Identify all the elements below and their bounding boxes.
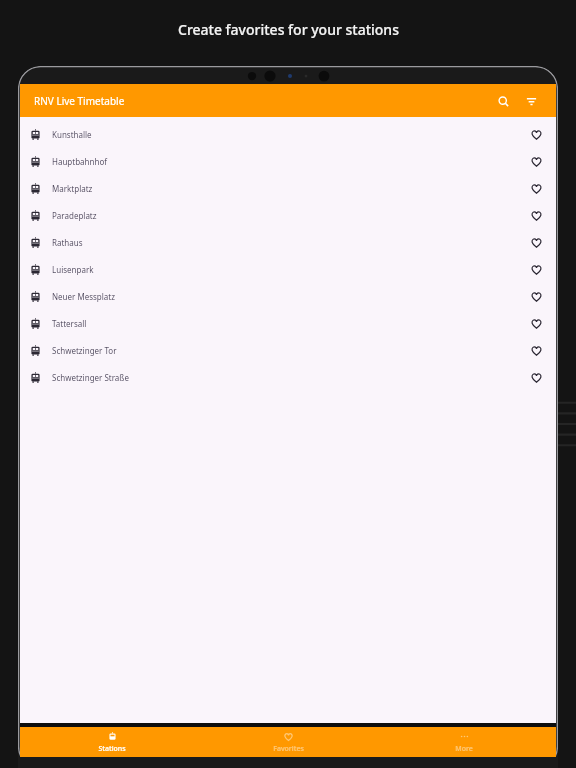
staticText: Kunsthalle	[52, 129, 92, 140]
staticText: Stations	[98, 744, 126, 754]
staticText: Rathaus	[52, 237, 83, 248]
staticText: Create favorites for your stations	[178, 20, 399, 39]
button[interactable]: Search	[492, 90, 514, 112]
staticText: Marktplatz	[52, 183, 93, 194]
button[interactable]: Stations	[28, 727, 196, 757]
button[interactable]: Add Tattersall to favorites	[526, 314, 546, 334]
staticText: Schwetzinger Straße	[52, 372, 129, 383]
button[interactable]: Add Rathaus to favorites	[526, 233, 546, 253]
button[interactable]: Add Schwetzinger Tor to favorites	[526, 341, 546, 361]
staticText: Neuer Messplatz	[52, 291, 115, 302]
button[interactable]: Kunsthalle	[20, 121, 556, 148]
button[interactable]: Add Kunsthalle to favorites	[526, 125, 546, 145]
staticText: Luisenpark	[52, 264, 94, 275]
button[interactable]: Marktplatz	[20, 175, 556, 202]
button[interactable]: Add Neuer Messplatz to favorites	[526, 287, 546, 307]
button[interactable]: Add Marktplatz to favorites	[526, 179, 546, 199]
button[interactable]: Hauptbahnhof	[20, 148, 556, 175]
button[interactable]: Rathaus	[20, 229, 556, 256]
button[interactable]: More	[380, 727, 548, 757]
button[interactable]: Paradeplatz	[20, 202, 556, 229]
button[interactable]: Add Hauptbahnhof to favorites	[526, 152, 546, 172]
button[interactable]: Luisenpark	[20, 256, 556, 283]
staticText: Tattersall	[52, 318, 87, 329]
staticText: RNV Live Timetable	[34, 94, 125, 108]
button[interactable]: Schwetzinger Straße	[20, 364, 556, 391]
button[interactable]: Tattersall	[20, 310, 556, 337]
button[interactable]: Add Schwetzinger Straße to favorites	[526, 368, 546, 388]
staticText: More	[455, 744, 473, 754]
button[interactable]: Add Luisenpark to favorites	[526, 260, 546, 280]
button[interactable]: Neuer Messplatz	[20, 283, 556, 310]
staticText: Hauptbahnhof	[52, 156, 107, 167]
staticText: Paradeplatz	[52, 210, 97, 221]
button[interactable]: Schwetzinger Tor	[20, 337, 556, 364]
button[interactable]: Add Paradeplatz to favorites	[526, 206, 546, 226]
staticText: Favorites	[273, 744, 304, 754]
button[interactable]: Filter	[520, 90, 542, 112]
button[interactable]: Favorites	[204, 727, 372, 757]
staticText: Schwetzinger Tor	[52, 345, 117, 356]
